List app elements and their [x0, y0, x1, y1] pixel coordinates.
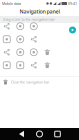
- button[interactable]: Navigation key: [27, 46, 40, 59]
- button[interactable]: Navigation key: [0, 20, 13, 33]
- staticText: Mobile data: [2, 1, 21, 6]
- button[interactable]: Navigation key: [13, 33, 27, 46]
- button[interactable]: Navigation key: [0, 46, 13, 59]
- button[interactable]: Navigation key: [40, 46, 54, 59]
- button[interactable]: Back: [15, 128, 27, 140]
- button[interactable]: Navigation key: [27, 59, 40, 72]
- staticText: Clear the navigation bar: [11, 80, 49, 84]
- button[interactable]: Navigation key: [13, 20, 27, 33]
- staticText: Navigation panel: [19, 8, 59, 15]
- staticText: Drag icons to the navigation bar: [2, 17, 54, 22]
- staticText: 09:41: [68, 1, 77, 6]
- button[interactable]: Navigation key: [13, 46, 27, 59]
- button[interactable]: Recents: [51, 128, 63, 140]
- button[interactable]: Clear the navigation bar: [0, 77, 79, 88]
- button[interactable]: Navigation key: [0, 59, 13, 72]
- button[interactable]: Navigation key: [40, 20, 54, 33]
- button[interactable]: Navigation key: [27, 33, 40, 46]
- button[interactable]: Navigation key: [0, 33, 13, 46]
- button[interactable]: Navigation key: [40, 59, 54, 72]
- button[interactable]: Home: [33, 128, 45, 140]
- button[interactable]: Preview navigation bar: [69, 26, 76, 33]
- button[interactable]: Navigation key: [13, 59, 27, 72]
- button[interactable]: Navigation key: [27, 20, 40, 33]
